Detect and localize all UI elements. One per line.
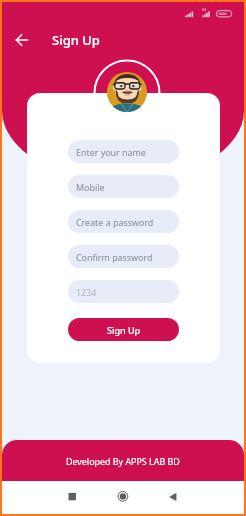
staticText: Mobile (76, 181, 105, 193)
button[interactable]: Mobile (68, 175, 179, 198)
staticText: Sign Up (107, 324, 141, 336)
button[interactable]: Back (9, 27, 35, 53)
button[interactable]: Enter your name (68, 140, 179, 163)
button[interactable]: 1234 (68, 280, 179, 303)
button[interactable]: Confirm password (68, 245, 179, 268)
staticText: Confirm password (76, 251, 153, 263)
button[interactable]: Create a password (68, 210, 179, 233)
staticText: Sign Up (52, 31, 100, 49)
staticText: 1234 (76, 286, 97, 298)
staticText: Enter your name (76, 146, 146, 158)
button[interactable]: Developed By APPS LAB BD (2, 440, 244, 481)
staticText: Create a password (76, 216, 154, 228)
staticText: Developed By APPS LAB BD (66, 455, 180, 467)
button[interactable]: Sign Up (68, 318, 179, 341)
